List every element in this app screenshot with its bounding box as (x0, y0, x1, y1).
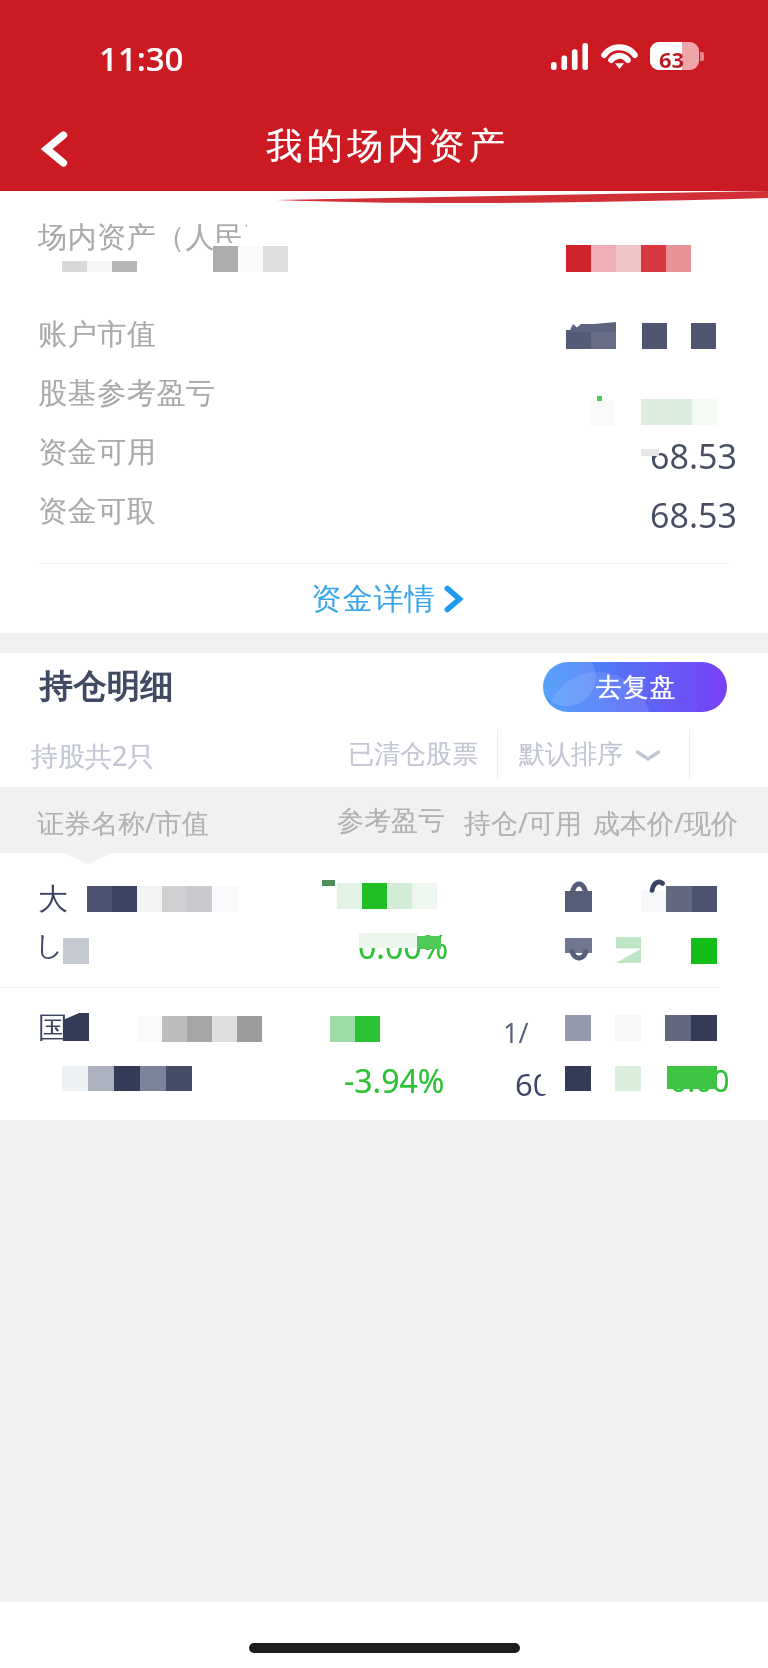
staticText: 资金详情 (311, 580, 435, 618)
staticText: 68.53 (650, 492, 737, 538)
staticText: 账户市值 (38, 316, 156, 353)
staticText: 0.00 (670, 1060, 730, 1101)
staticText: 持仓明细 (39, 666, 173, 708)
staticText: 1/ (503, 1014, 529, 1051)
staticText: 股基参考盈亏 (38, 375, 215, 412)
staticText: 持仓/可用 (464, 804, 583, 841)
staticText: 0.00% (358, 925, 449, 969)
staticText: 60 (515, 1063, 551, 1105)
staticText: 资金可取 (38, 493, 156, 530)
staticText: 默认排序 (519, 738, 623, 771)
button[interactable]: 资金详情 (311, 580, 462, 618)
staticText: 参考盈亏 (337, 804, 445, 838)
staticText: 持股共2只 (31, 737, 155, 774)
button[interactable]: 去复盘 (543, 662, 727, 712)
staticText: 证券名称/市值 (37, 804, 210, 841)
staticText: 68.53 (650, 433, 737, 479)
button[interactable] (0, 988, 768, 1119)
staticText: 场内资产（人民币） (38, 219, 304, 256)
staticText: -3.94% (344, 1059, 445, 1103)
button[interactable] (0, 853, 768, 987)
staticText: 11:30 (99, 36, 184, 81)
button[interactable]: 默认排序 (519, 738, 661, 771)
staticText: 63 (659, 44, 685, 72)
staticText: 国 (38, 1009, 68, 1047)
staticText: 成本价/现价 (593, 804, 739, 841)
staticText: 大 (38, 880, 68, 918)
staticText: 我的场内资产 (264, 123, 507, 168)
button[interactable]: 已清仓股票 (348, 738, 478, 771)
button[interactable]: Back (25, 119, 85, 179)
staticText: し (35, 928, 64, 963)
staticText: 资金可用 (38, 434, 156, 471)
staticText: 去复盘 (595, 671, 676, 704)
